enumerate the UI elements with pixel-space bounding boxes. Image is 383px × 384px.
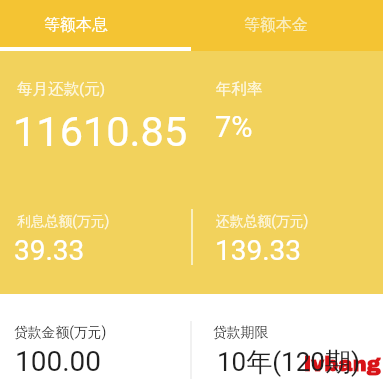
button[interactable]: 等额本息 [0, 0, 191, 51]
staticText: 利息总额(万元) [17, 213, 110, 230]
button[interactable]: 还款总额(万元) [191, 204, 383, 270]
button[interactable]: 年利率 [191, 68, 383, 158]
staticText: 39.33 [14, 234, 85, 267]
button[interactable]: 每月还款(元) [0, 68, 191, 158]
staticText: 10年(120期) [217, 346, 361, 379]
staticText: 年利率 [216, 79, 263, 99]
button[interactable]: 贷款金额(万元) [0, 308, 190, 384]
button[interactable]: 利息总额(万元) [0, 204, 191, 270]
staticText: 等额本息 [44, 15, 108, 35]
staticText: lvbang [304, 353, 382, 376]
staticText: 等额本金 [244, 15, 308, 35]
staticText: 每月还款(元) [17, 79, 106, 99]
staticText: 贷款期限 [213, 324, 269, 341]
staticText: 100.00 [15, 345, 102, 378]
staticText: 7% [215, 110, 253, 144]
staticText: 贷款金额(万元) [14, 324, 107, 341]
button[interactable]: 等额本金 [191, 0, 383, 51]
staticText: 还款总额(万元) [216, 213, 309, 230]
staticText: 139.33 [215, 234, 302, 267]
staticText: 11610.85 [13, 107, 188, 156]
button[interactable]: 贷款期限 [192, 308, 383, 384]
